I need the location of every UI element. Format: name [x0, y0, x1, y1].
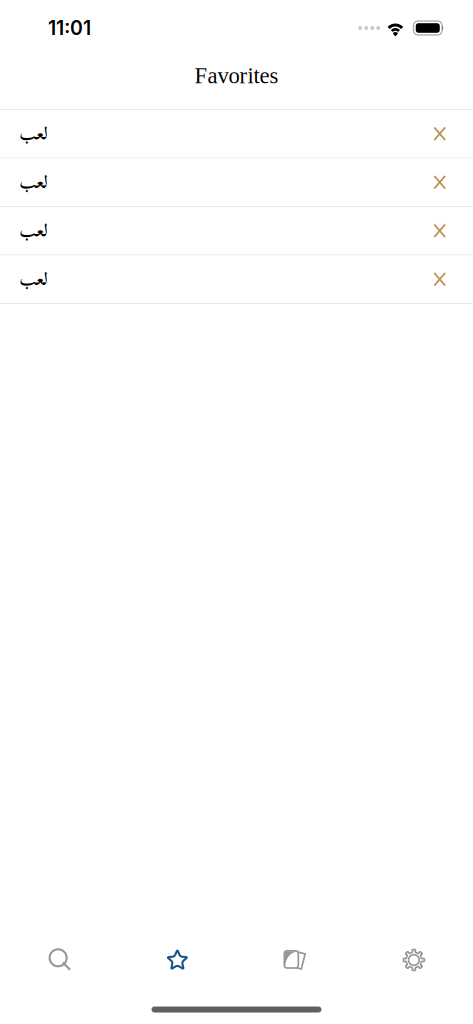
- staticText: لعب: [19, 165, 47, 200]
- button[interactable]: لعب: [0, 110, 473, 157]
- button[interactable]: لعب: [0, 207, 473, 254]
- staticText: لعب: [19, 262, 47, 297]
- staticText: Favorites: [194, 63, 278, 88]
- button[interactable]: Search: [0, 925, 118, 995]
- staticText: لعب: [19, 116, 47, 151]
- button[interactable]: Favorites: [118, 925, 236, 995]
- button[interactable]: Settings: [355, 925, 473, 995]
- button[interactable]: Flashcards: [236, 925, 355, 995]
- button[interactable]: لعب: [0, 158, 473, 206]
- staticText: 11:01: [48, 16, 91, 40]
- button[interactable]: لعب: [0, 255, 473, 303]
- staticText: لعب: [19, 213, 47, 248]
